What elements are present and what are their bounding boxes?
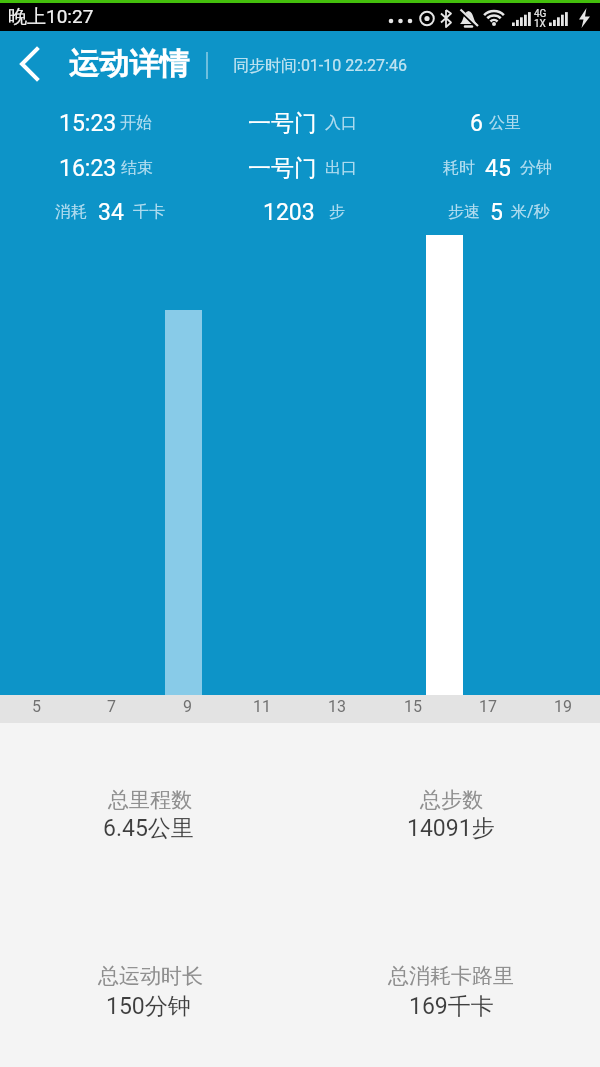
staticText: 结束 [121,158,153,178]
staticText: 7 [107,697,116,716]
staticText: 总里程数 [108,787,192,813]
staticText: 4G [534,8,547,20]
staticText: 15:23 [59,110,117,137]
staticText: 分钟 [520,158,552,178]
staticText: 千卡 [133,202,165,222]
staticText: 5 [32,697,41,716]
staticText: 6 [470,110,483,137]
staticText: 11 [253,697,271,716]
staticText: 同步时间:01-10 22:27:46 [233,56,407,76]
staticText: 入口 [325,113,357,133]
staticText: 34 [98,199,124,226]
staticText: 米/秒 [511,202,550,222]
staticText: 5 [490,199,503,226]
staticText: 15 [404,697,422,716]
staticText: 1X [534,18,546,30]
staticText: 169千卡 [409,992,494,1021]
staticText: 19 [554,697,572,716]
staticText: 总步数 [420,787,483,813]
staticText: 6.45公里 [103,814,194,843]
staticText: 一号门 [248,109,317,138]
staticText: 消耗 [55,202,87,222]
staticText: 开始 [120,113,152,133]
staticText: 16:23 [59,155,117,182]
staticText: 1203 [263,199,315,226]
staticText: 公里 [489,113,521,133]
staticText: 9 [183,697,192,716]
staticText: 步 [329,202,345,222]
staticText: 总运动时长 [98,963,203,989]
button[interactable] [6,40,56,88]
staticText: 耗时 [443,158,475,178]
staticText: 13 [328,697,346,716]
staticText: 运动详情 [69,45,189,83]
staticText: 150分钟 [106,992,191,1021]
staticText: 总消耗卡路里 [388,963,514,989]
staticText: 45 [485,155,511,182]
staticText: 17 [479,697,497,716]
staticText: 晚上10:27 [8,5,94,29]
staticText: 步速 [448,202,480,222]
staticText: 出口 [325,158,357,178]
staticText: 14091步 [407,814,495,843]
staticText: 一号门 [248,154,317,183]
